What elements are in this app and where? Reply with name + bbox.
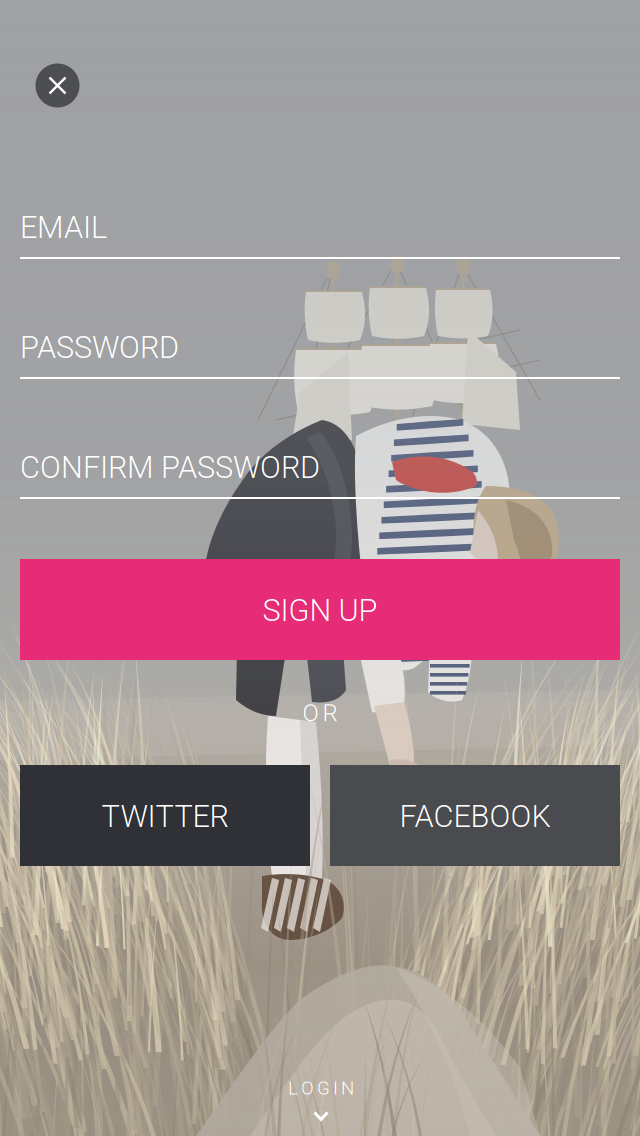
- button[interactable]: L O G I N: [211, 1079, 431, 1136]
- button[interactable]: Close: [35, 63, 79, 107]
- staticText: O R: [302, 699, 337, 727]
- button[interactable]: FACEBOOK: [330, 765, 620, 866]
- staticText: FACEBOOK: [399, 798, 550, 834]
- button[interactable]: SIGN UP: [20, 559, 620, 660]
- staticText: EMAIL: [20, 209, 107, 245]
- staticText: SIGN UP: [262, 592, 377, 628]
- staticText: CONFIRM PASSWORD: [20, 449, 320, 485]
- staticText: PASSWORD: [20, 329, 179, 365]
- staticText: L O G I N: [288, 1077, 354, 1099]
- staticText: TWITTER: [101, 798, 228, 834]
- button[interactable]: TWITTER: [20, 765, 310, 866]
